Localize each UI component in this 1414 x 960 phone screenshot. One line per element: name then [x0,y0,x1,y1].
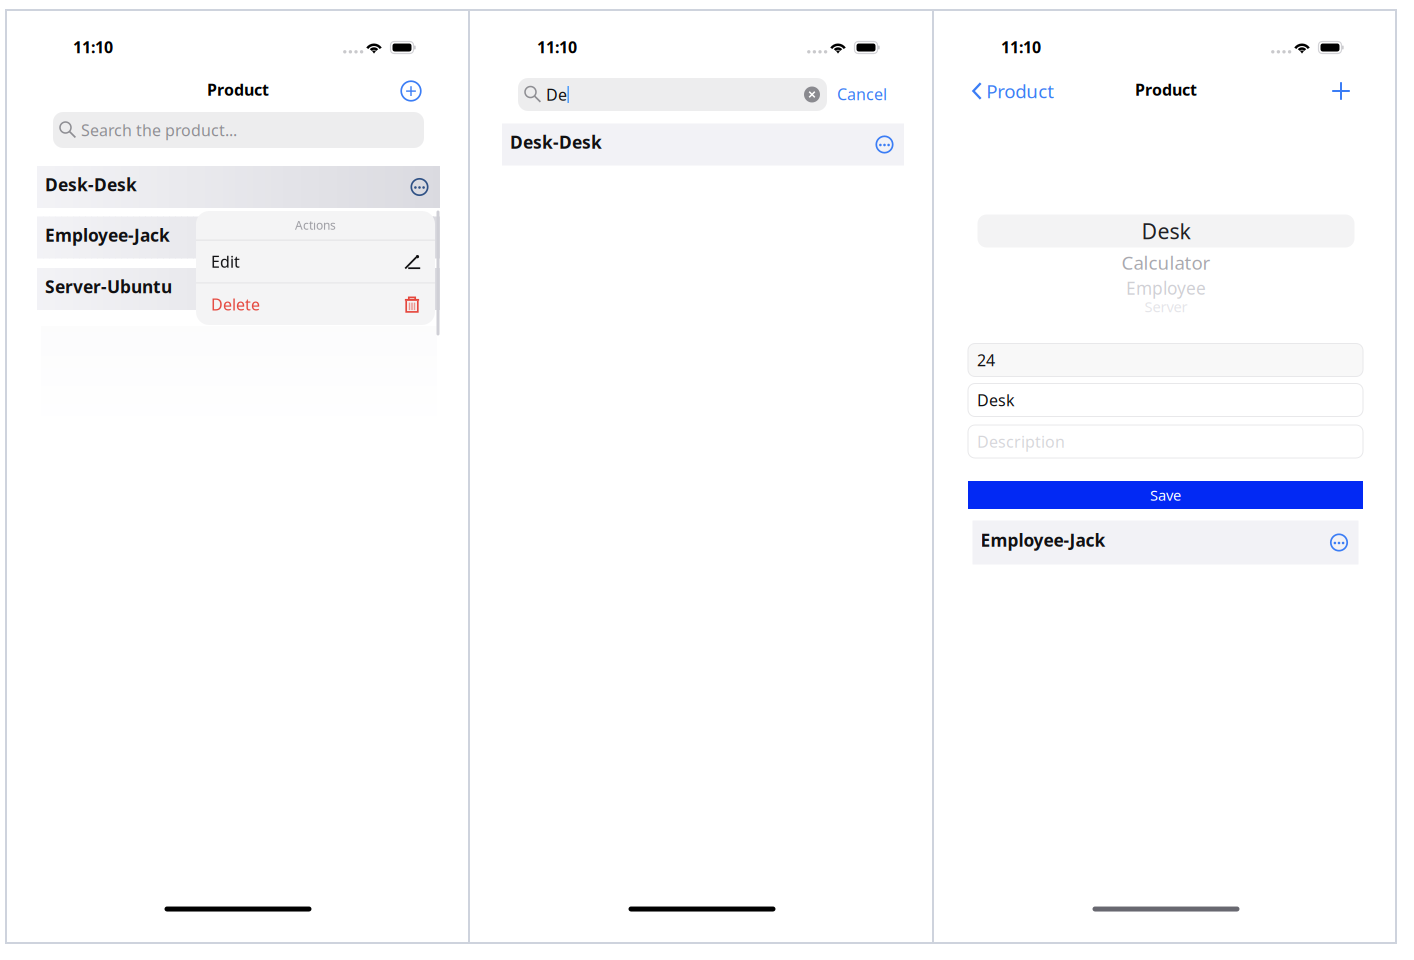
staticText: Cancel [837,83,887,105]
staticText: Edit [211,251,240,272]
staticText: 11:10 [73,36,113,58]
staticText: Desk [977,389,1015,411]
staticText: Employee [1126,276,1206,299]
staticText: Product [986,79,1054,103]
button[interactable]: Employee-Jack [972,520,1358,564]
staticText: Product [1135,79,1197,100]
staticText: Product [207,79,269,100]
staticText: Employee-Jack [45,223,170,246]
staticText: Save [1150,485,1181,505]
staticText: Actions [295,217,336,233]
staticText: Server-Ubuntu [45,275,172,298]
button[interactable]: Add product [392,72,430,110]
staticText: 11:10 [1001,36,1041,58]
staticText: Employee-Jack [980,528,1105,551]
button[interactable]: Delete [196,283,435,325]
button[interactable]: Save [968,481,1363,509]
button[interactable]: Product [967,69,1059,113]
button[interactable]: Server-Ubuntu [37,268,439,310]
staticText: Calculator [1121,250,1210,275]
staticText: 24 [977,349,995,371]
button[interactable]: Employee-Jack [37,216,439,258]
staticText: 11:10 [537,36,577,58]
staticText: De [546,84,567,105]
button[interactable]: Search the product... [53,112,424,148]
staticText: Server [1144,297,1187,316]
button[interactable]: Add product [1322,72,1360,110]
staticText: Delete [211,294,260,315]
button[interactable]: Cancel [830,74,894,114]
button[interactable]: Desk-Desk [502,123,904,165]
button[interactable]: Edit [196,240,435,282]
staticText: Description [977,431,1065,452]
staticText: Desk-Desk [45,173,137,196]
staticText: Search the product... [81,119,237,141]
staticText: Desk [1141,217,1190,245]
button[interactable]: Desk-Desk [37,166,439,208]
staticText: Desk-Desk [510,130,602,153]
